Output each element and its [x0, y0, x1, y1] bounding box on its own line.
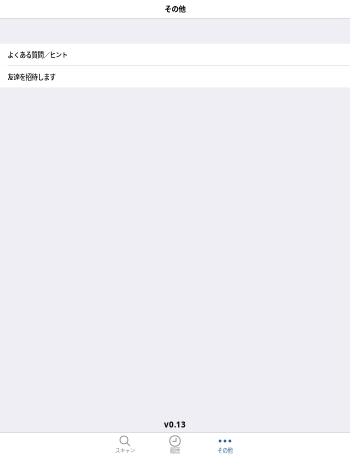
button[interactable]: スキャン: [100, 433, 150, 460]
staticText: その他: [217, 446, 232, 454]
staticText: v0.13: [164, 419, 186, 430]
button[interactable]: その他: [200, 433, 250, 460]
button[interactable]: 友達を招待します: [0, 66, 350, 87]
staticText: よくある質問／ヒント: [7, 50, 67, 59]
button[interactable]: よくある質問／ヒント: [0, 44, 350, 65]
staticText: その他: [164, 3, 185, 13]
staticText: 履歴: [170, 446, 180, 454]
staticText: 友達を招待します: [7, 72, 55, 81]
button[interactable]: 履歴: [150, 433, 200, 460]
staticText: スキャン: [115, 446, 135, 454]
